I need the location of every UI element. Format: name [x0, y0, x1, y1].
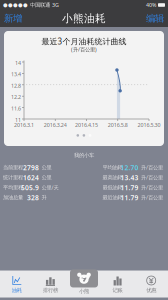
staticText: 1624	[23, 173, 39, 182]
staticText: 升/百公里	[141, 164, 163, 171]
staticText: 11	[15, 116, 21, 123]
staticText: 11.79	[120, 193, 138, 202]
staticText: 小熊	[79, 288, 89, 295]
button[interactable]: 油耗	[0, 270, 34, 297]
staticText: 2016.3.24	[44, 121, 67, 129]
staticText: 加油总量	[3, 194, 23, 201]
staticText: 12.70	[120, 163, 138, 172]
staticText: 中国联通	[30, 2, 50, 8]
staticText: 11.79	[120, 183, 138, 192]
staticText: 平均油耗	[102, 164, 122, 171]
button[interactable]: 优惠	[134, 270, 168, 297]
staticText: (升/百公里)	[71, 46, 97, 53]
staticText: 平均里程	[3, 184, 23, 191]
staticText: 最近3个月油耗统计曲线	[41, 36, 126, 47]
staticText: 40%	[146, 1, 156, 9]
staticText: 升	[41, 194, 46, 201]
button[interactable]: 小熊	[70, 269, 98, 298]
button[interactable]: 新增	[1, 11, 25, 26]
staticText: 公里	[41, 174, 51, 181]
staticText: 最高油耗	[102, 174, 122, 181]
staticText: 油耗	[12, 287, 22, 294]
staticText: 我的小车	[74, 152, 94, 159]
staticText: 编辑	[146, 13, 164, 24]
staticText: 排行榜	[43, 287, 58, 294]
staticText: ●●●●●	[3, 2, 28, 8]
staticText: 小熊油耗	[62, 12, 106, 25]
button[interactable]	[67, 270, 101, 297]
staticText: 2016.3.1	[14, 121, 34, 129]
staticText: 2016.5.8	[108, 121, 128, 129]
staticText: 统计里程	[3, 174, 23, 181]
staticText: 2016.5.30	[137, 121, 160, 129]
button[interactable]: 排行榜	[34, 270, 67, 297]
staticText: 最低油耗	[102, 184, 122, 191]
staticText: 13.43	[120, 173, 138, 182]
staticText: 12.2	[11, 93, 21, 101]
staticText: 2016.4.15	[75, 121, 98, 129]
button[interactable]: 记账	[101, 270, 134, 297]
staticText: 公里/天	[41, 184, 58, 191]
staticText: 3G	[52, 1, 59, 9]
staticText: 12.8	[11, 82, 21, 89]
staticText: 当前里程	[3, 164, 23, 171]
staticText: 升/百公里	[141, 174, 163, 181]
staticText: 新增	[4, 13, 22, 24]
staticText: 最近油耗	[102, 194, 122, 201]
staticText: 13.4	[11, 71, 21, 78]
staticText: 11.6	[11, 105, 21, 112]
staticText: 记账	[113, 287, 123, 294]
staticText: 优惠	[146, 287, 156, 294]
button[interactable]: 编辑	[143, 11, 167, 26]
staticText: 升/百公里	[141, 184, 163, 191]
staticText: 2798	[23, 163, 39, 172]
staticText: 328	[27, 193, 39, 202]
staticText: 14	[15, 59, 21, 66]
staticText: 公里	[41, 164, 51, 171]
staticText: 505.9	[21, 183, 39, 192]
staticText: 升/百公里	[141, 194, 163, 201]
